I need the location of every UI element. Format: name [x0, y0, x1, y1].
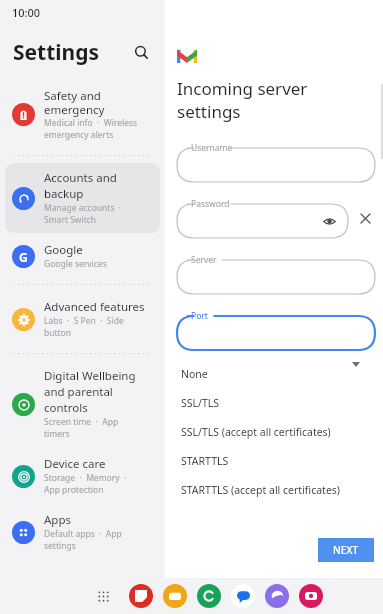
staticText: backup	[44, 186, 84, 202]
button[interactable]: Search	[128, 39, 154, 65]
staticText: Server	[191, 254, 217, 266]
staticText: Google services	[44, 258, 107, 270]
staticText: Apps	[44, 512, 72, 528]
staticText: Google	[44, 242, 83, 258]
staticText: Security type	[177, 364, 229, 376]
staticText: NEXT	[333, 543, 359, 557]
button[interactable]	[177, 141, 375, 182]
staticText: timers	[44, 428, 70, 440]
staticText: G	[19, 249, 28, 265]
button[interactable]	[177, 253, 375, 294]
button[interactable]: Clear	[355, 208, 375, 228]
staticText: controls	[44, 400, 88, 416]
staticText: App protection	[44, 484, 104, 496]
button[interactable]: Show password	[320, 212, 338, 230]
staticText: Screen time · App	[44, 416, 119, 428]
staticText: emergency alerts	[44, 129, 114, 141]
staticText: None	[181, 367, 208, 381]
button[interactable]: None	[170, 359, 352, 388]
staticText: button	[44, 327, 72, 339]
button[interactable]: STARTTLS	[170, 446, 352, 475]
staticText: Labs · S Pen · Side	[44, 315, 124, 327]
staticText: Advanced features	[44, 299, 145, 315]
button[interactable]: Device care	[5, 449, 160, 503]
staticText: Settings	[13, 38, 128, 67]
staticText: Digital Wellbeing	[44, 368, 136, 384]
staticText: Accounts and	[44, 170, 117, 186]
button[interactable]: Internet	[265, 584, 289, 608]
staticText: 10:00	[12, 5, 41, 20]
button[interactable]: Apps	[5, 505, 160, 559]
button[interactable]: NEXT	[318, 538, 374, 562]
staticText: STARTTLS	[181, 454, 229, 468]
staticText: settings	[44, 540, 76, 552]
button[interactable]: G	[5, 235, 160, 277]
staticText: Safety and emergency	[44, 88, 154, 117]
button[interactable]: Digital Wellbeing	[5, 361, 160, 447]
button[interactable]	[177, 197, 348, 238]
button[interactable]: All apps	[94, 587, 112, 605]
staticText: Default apps · App	[44, 528, 122, 540]
staticText: Incoming server settings	[177, 77, 375, 123]
staticText: Medical info · Wireless	[44, 117, 138, 129]
staticText: Manage accounts ·	[44, 202, 122, 214]
button[interactable]: Messages	[231, 584, 255, 608]
staticText: Device care	[44, 456, 106, 472]
staticText: Smart Switch	[44, 214, 97, 226]
staticText: Port	[191, 310, 208, 322]
button[interactable]: STARTTLS (accept all certificates)	[170, 475, 352, 504]
button[interactable]: Notes	[129, 584, 153, 608]
button[interactable]: SSL/TLS (accept all certificates)	[170, 417, 352, 446]
staticText: SSL/TLS	[181, 396, 220, 410]
staticText: Username	[191, 142, 233, 154]
button[interactable]: Accounts and	[5, 163, 160, 233]
button[interactable]: Safety and emergency	[5, 81, 160, 148]
staticText: and parental	[44, 384, 113, 400]
button[interactable]: My Files	[163, 584, 187, 608]
button[interactable]: Phone	[197, 584, 221, 608]
button[interactable]: SSL/TLS	[170, 388, 352, 417]
staticText: SSL/TLS (accept all certificates)	[181, 425, 331, 439]
staticText: STARTTLS (accept all certificates)	[181, 483, 340, 497]
button[interactable]: Camera	[299, 584, 323, 608]
staticText: Storage · Memory ·	[44, 472, 127, 484]
button[interactable]: Advanced features	[5, 292, 160, 346]
button[interactable]	[177, 309, 375, 350]
staticText: Password	[191, 198, 230, 210]
